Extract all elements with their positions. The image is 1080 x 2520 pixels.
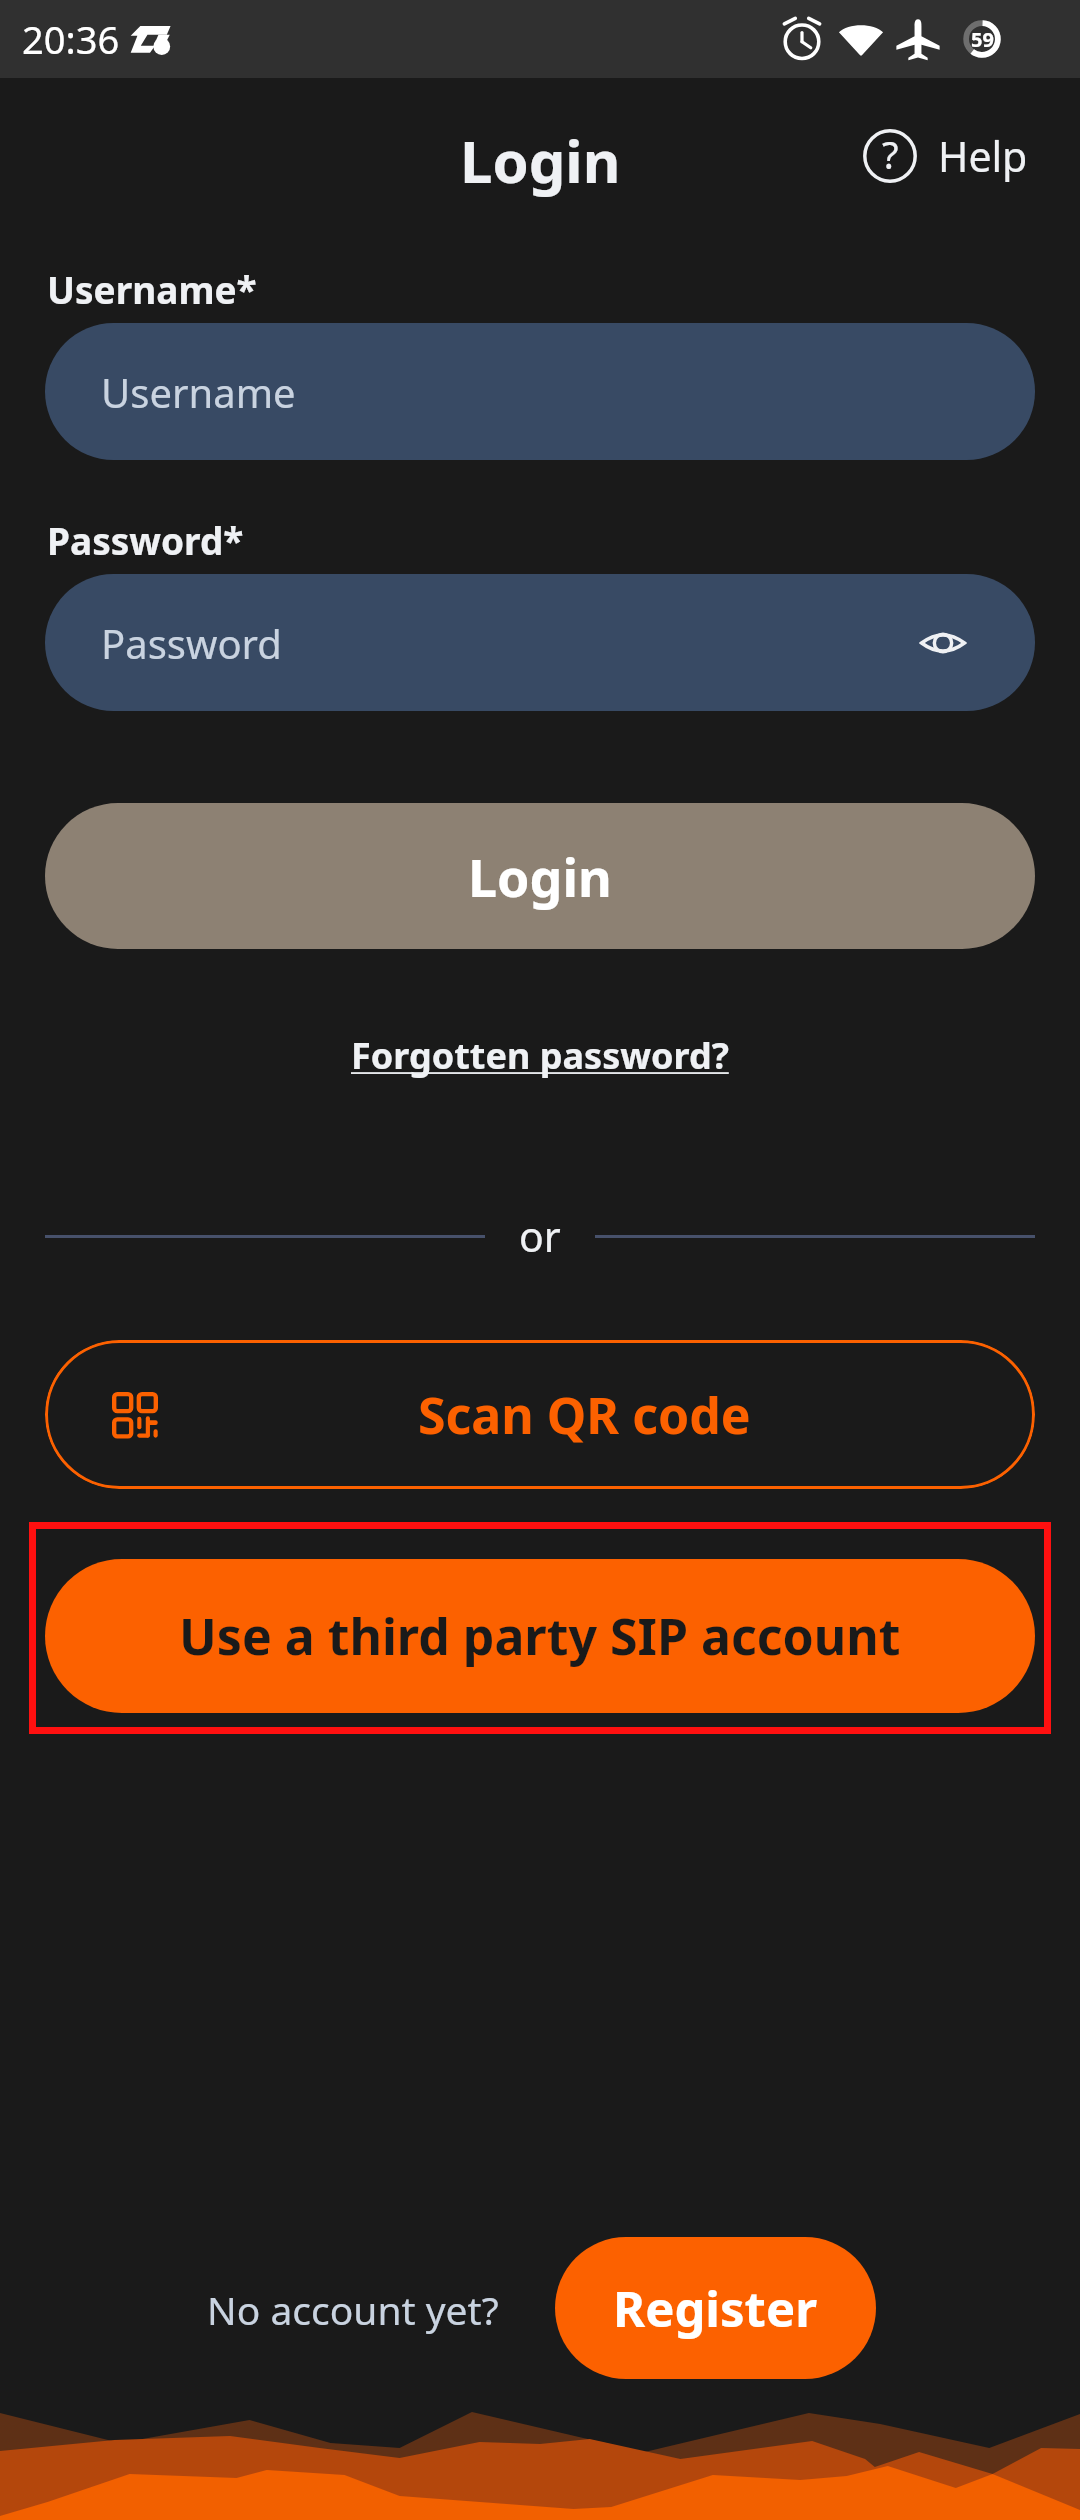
staticText: No account yet? [207, 2283, 499, 2336]
button[interactable]: ? [850, 118, 1040, 194]
staticText: 59 [971, 26, 994, 53]
staticText: Username* [47, 264, 257, 314]
button[interactable]: Password [45, 574, 1035, 711]
button[interactable]: Register [555, 2237, 876, 2379]
button[interactable]: Scan QR code [45, 1340, 1035, 1489]
staticText: 20:36 [22, 13, 120, 65]
staticText: Scan QR code [418, 1381, 751, 1449]
staticText: or [519, 1208, 561, 1264]
staticText: Help [938, 128, 1028, 184]
button[interactable]: Forgotten password? [331, 1021, 749, 1090]
staticText: Use a third party SIP account [179, 1602, 901, 1670]
staticText: Password* [47, 515, 244, 565]
staticText: Login [460, 121, 621, 200]
button[interactable]: Login [45, 803, 1035, 949]
staticText: Forgotten password? [351, 1031, 729, 1080]
staticText: Password [101, 616, 282, 670]
button[interactable]: Show password [907, 607, 979, 679]
button[interactable]: Username [45, 323, 1035, 460]
button[interactable]: Use a third party SIP account [45, 1559, 1035, 1713]
staticText: Username [101, 365, 296, 419]
staticText: Login [468, 841, 612, 912]
staticText: Register [613, 2275, 818, 2342]
staticText: ? [882, 128, 899, 180]
